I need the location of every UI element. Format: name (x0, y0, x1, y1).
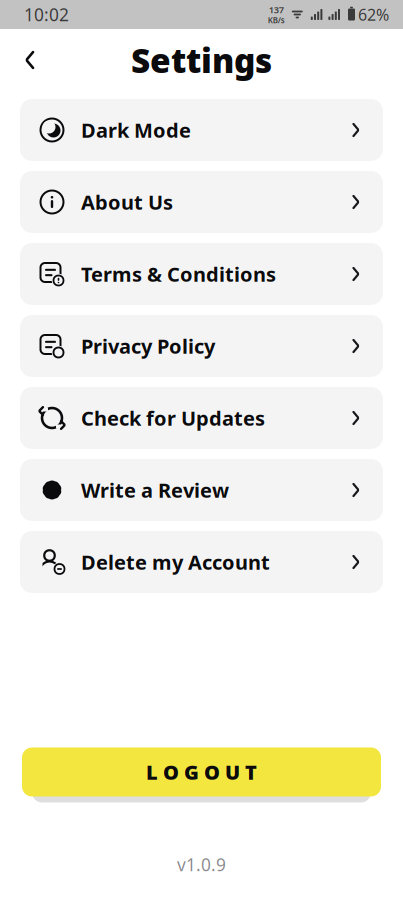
button[interactable]: L O G O U T (0, 741, 403, 803)
staticText: 62% (358, 4, 389, 25)
staticText: About Us (81, 189, 173, 215)
staticText: Check for Updates (81, 405, 265, 431)
staticText: Terms & Conditions (81, 261, 276, 287)
staticText: KB/s (268, 15, 285, 25)
button[interactable]: Delete my Account (20, 531, 383, 593)
button[interactable]: About Us (20, 171, 383, 233)
staticText: v1.0.9 (177, 853, 226, 876)
staticText: 137 (269, 3, 284, 16)
button[interactable]: Back (10, 40, 50, 80)
staticText: L O G O U T (146, 759, 257, 785)
button[interactable]: Write a Review (20, 459, 383, 521)
staticText: Privacy Policy (81, 333, 215, 359)
staticText: Settings (131, 38, 272, 82)
button[interactable]: Privacy Policy (20, 315, 383, 377)
button[interactable]: Terms & Conditions (20, 243, 383, 305)
staticText: Dark Mode (81, 117, 191, 143)
staticText: Write a Review (81, 477, 229, 503)
staticText: Delete my Account (81, 549, 270, 575)
staticText: 10:02 (24, 3, 69, 26)
button[interactable]: Dark Mode (20, 99, 383, 161)
button[interactable]: Check for Updates (20, 387, 383, 449)
